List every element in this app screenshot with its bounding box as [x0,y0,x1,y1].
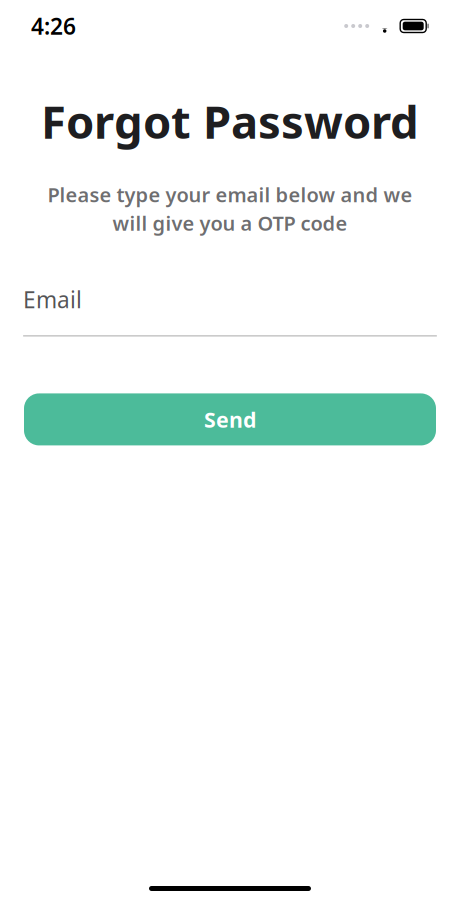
staticText: Send [204,405,256,434]
staticText: will give you a OTP code [112,210,347,236]
staticText: 4:26 [31,11,76,41]
staticText: Forgot Password [41,91,419,151]
staticText: Please type your email below and we [47,181,412,208]
staticText: Email [23,284,82,314]
button[interactable]: Send [24,393,436,445]
